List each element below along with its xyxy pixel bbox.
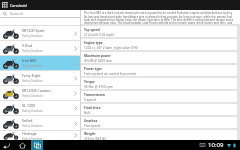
staticText: Five-speed [84, 124, 100, 128]
staticText: Harley-Davidson [22, 34, 43, 38]
button[interactable]: Softail [0, 116, 80, 130]
button[interactable]: XR1200 Sport [0, 26, 80, 40]
button[interactable]: Home [16, 140, 29, 150]
staticText: Iron 883 [22, 58, 37, 63]
staticText: 212 km/h (132 mph) [84, 33, 115, 37]
staticText: Power type [84, 67, 102, 71]
staticText: XR1200X Custom [22, 88, 51, 93]
staticText: 5-speed [84, 98, 96, 102]
button[interactable]: Maximum power [81, 52, 237, 63]
staticText: Weight [84, 132, 96, 136]
button[interactable]: Search [0, 10, 80, 18]
staticText: Harley-Davidson [22, 79, 43, 83]
staticText: Heritage [22, 131, 37, 136]
staticText: 1202 cc, 45° V-twin, eight-valve OHV [84, 46, 138, 50]
staticText: Search [10, 11, 24, 17]
button[interactable]: XL 1200 [0, 101, 80, 115]
staticText: 256 kg (564 lb) [84, 137, 106, 140]
staticText: Carsdroid [10, 3, 27, 8]
staticText: Final drive [84, 106, 101, 110]
button[interactable]: Forty-Eight [0, 71, 80, 85]
staticText: V-Rod [22, 43, 32, 48]
button[interactable]: XR1200X Custom [0, 86, 80, 100]
staticText: Harley-Davidson [22, 137, 43, 140]
staticText: Fuel-injected air-cooled four-stroke [84, 72, 137, 76]
button[interactable]: V-Rod [0, 41, 80, 55]
button[interactable]: Heritage [0, 131, 80, 140]
button[interactable]: Power type [81, 65, 237, 76]
staticText: 10:09 [208, 141, 224, 149]
staticText: Harley-Davidson [22, 124, 43, 128]
button[interactable]: Gearbox [81, 117, 237, 128]
staticText: Harley-Davidson [22, 94, 43, 98]
staticText: Harley-Davidson [22, 49, 43, 53]
button[interactable]: Weight [81, 130, 237, 140]
button[interactable]: Iron 883 [0, 56, 80, 70]
button[interactable]: Back [0, 140, 13, 150]
staticText: 49 kW @ 6000 rpm [84, 59, 113, 63]
button[interactable]: Engine type [81, 39, 237, 50]
staticText: Top speed [84, 28, 100, 32]
staticText: Harley-Davidson [22, 64, 43, 68]
staticText: Gearbox [84, 119, 98, 123]
button[interactable]: App icon [2, 2, 8, 8]
staticText: XL 1200 [22, 103, 36, 108]
staticText: Torque [84, 80, 95, 84]
button[interactable]: Recent apps [31, 140, 43, 150]
staticText: Softail [22, 118, 33, 123]
staticText: Transmission [84, 93, 105, 97]
staticText: Maximum power [84, 54, 111, 58]
staticText: Harley-Davidson [22, 109, 43, 113]
staticText: Belt [84, 111, 90, 115]
staticText: Engine type [84, 41, 103, 45]
staticText: The Iron 883 is a dark custom motorcycle… [84, 11, 236, 24]
staticText: 96 Nm @ 3750 rpm [84, 85, 113, 89]
button[interactable]: Torque [81, 78, 237, 89]
staticText: Forty-Eight [22, 73, 41, 78]
button[interactable]: Top speed [81, 26, 237, 37]
button[interactable]: Transmission [81, 91, 237, 102]
staticText: XR1200 Sport [22, 28, 45, 33]
button[interactable]: Final drive [81, 104, 237, 115]
